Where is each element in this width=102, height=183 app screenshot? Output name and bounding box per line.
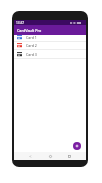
button[interactable]: Add card (73, 142, 81, 150)
staticText: Card 3 (26, 52, 37, 57)
button[interactable]: Recent apps (67, 154, 72, 159)
button[interactable]: Home (48, 154, 53, 159)
staticText: Card 2 (26, 43, 37, 48)
button[interactable]: Card 1 (14, 33, 86, 42)
button[interactable]: Card 3 (14, 50, 86, 59)
button[interactable]: Card 2 (14, 41, 86, 50)
staticText: 13:37 (16, 21, 25, 25)
staticText: Card 1 (26, 35, 37, 40)
staticText: CardVault Pro (17, 28, 42, 33)
button[interactable]: Back (28, 154, 33, 159)
